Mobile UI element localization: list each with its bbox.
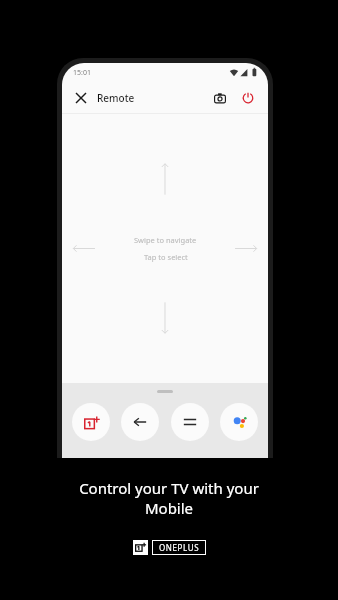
button[interactable]: Menu [171, 403, 209, 441]
staticText: Swipe to navigate [134, 235, 197, 245]
button[interactable]: OnePlus [133, 540, 206, 555]
button[interactable]: Screenshot [209, 87, 231, 109]
button[interactable]: OnePlus [72, 403, 110, 441]
button[interactable]: Touchpad [62, 114, 268, 383]
button[interactable]: Close [71, 88, 91, 108]
staticText: Remote [97, 91, 135, 105]
staticText: 15:01 [73, 68, 91, 78]
button[interactable]: Back [121, 403, 159, 441]
staticText: Tap to select [144, 252, 188, 262]
button[interactable]: Power [237, 87, 259, 109]
staticText: ONEPLUS [159, 542, 200, 553]
button[interactable]: Google Assistant [220, 403, 258, 441]
staticText: Control your TV with your Mobile [79, 478, 259, 518]
